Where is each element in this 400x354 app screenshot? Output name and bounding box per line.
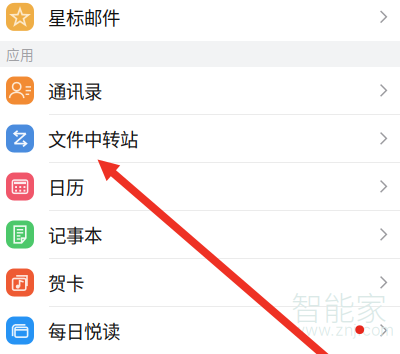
button[interactable]: 记事本 [0, 211, 400, 258]
staticText: 星标邮件 [48, 4, 120, 30]
staticText: 文件中转站 [48, 125, 138, 152]
button[interactable]: 应用 [0, 41, 400, 67]
button[interactable]: 每日悦读 [0, 307, 400, 354]
staticText: 每日悦读 [48, 317, 120, 344]
staticText: www.znj.com [292, 320, 394, 340]
button[interactable]: 通讯录 [0, 67, 400, 114]
staticText: 通讯录 [48, 77, 102, 104]
button[interactable]: 日历 [0, 163, 400, 210]
staticText: 应用 [6, 44, 34, 64]
button[interactable]: 文件中转站 [0, 115, 400, 162]
staticText: 记事本 [48, 221, 102, 248]
staticText: 贺卡 [48, 269, 84, 296]
button[interactable]: 星标邮件 [0, 0, 400, 41]
button[interactable]: 贺卡 [0, 259, 400, 306]
staticText: 智能家 [291, 283, 387, 329]
staticText: 日历 [48, 173, 84, 200]
